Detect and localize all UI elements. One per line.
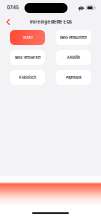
staticText: Studio bbox=[22, 35, 32, 40]
staticText: Bass Verstärker bbox=[14, 55, 40, 60]
button[interactable]: Popmusik bbox=[56, 70, 91, 85]
staticText: Popmusik bbox=[65, 75, 81, 80]
staticText: Bass Reduzieren bbox=[60, 35, 87, 40]
button[interactable]: Klassisch bbox=[10, 70, 45, 85]
button[interactable]: Akustik bbox=[56, 50, 91, 65]
staticText: 07:45 bbox=[7, 5, 19, 10]
staticText: Voreingestellte EQs bbox=[29, 19, 71, 25]
button[interactable]: Bass Reduzieren bbox=[56, 30, 91, 45]
staticText: Klassisch bbox=[19, 75, 36, 80]
button[interactable]: Back bbox=[3, 16, 14, 28]
button[interactable]: Studio bbox=[10, 30, 45, 45]
staticText: Akustik bbox=[67, 55, 80, 60]
button[interactable]: Bass Verstärker bbox=[10, 50, 45, 65]
